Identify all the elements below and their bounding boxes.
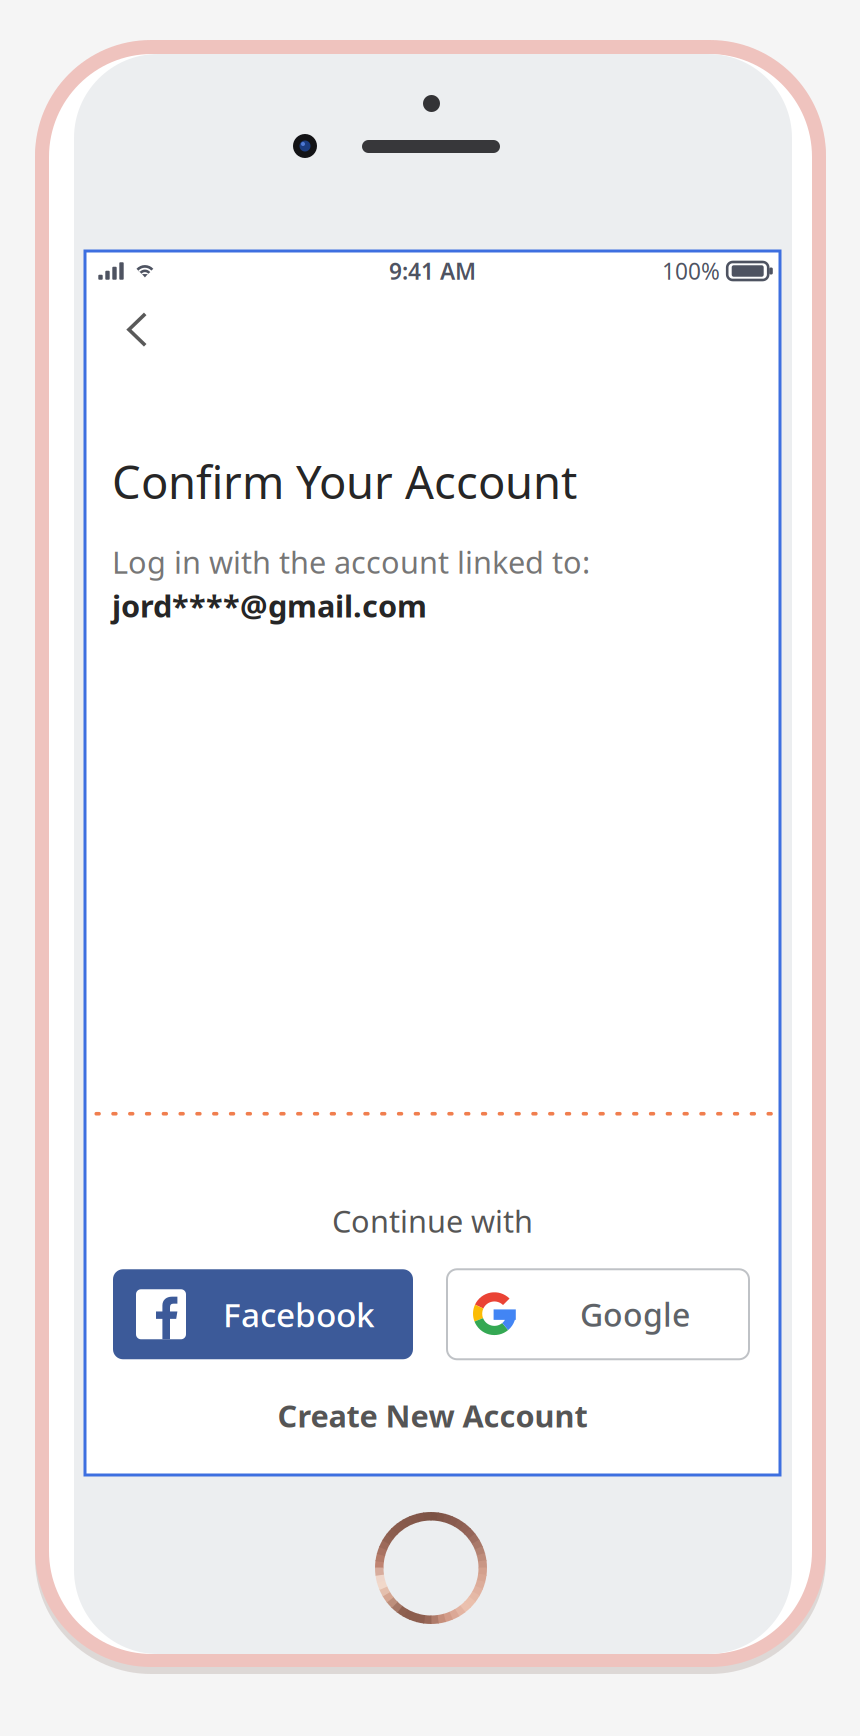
button[interactable]: Google <box>447 1269 749 1359</box>
staticText: Create New Account <box>277 1395 587 1436</box>
staticText: 100% <box>662 256 720 286</box>
staticText: Confirm Your Account <box>112 451 577 511</box>
staticText: Log in with the account linked to: <box>112 541 590 582</box>
button[interactable]: Create New Account <box>261 1386 603 1445</box>
staticText: Continue with <box>332 1201 533 1241</box>
staticText: Google <box>580 1293 690 1335</box>
staticText: Facebook <box>223 1292 375 1336</box>
button[interactable]: Facebook <box>113 1269 413 1359</box>
button[interactable]: Back <box>85 291 173 365</box>
staticText: 9:41 AM <box>389 256 476 286</box>
staticText: jord****@gmail.com <box>112 585 427 626</box>
